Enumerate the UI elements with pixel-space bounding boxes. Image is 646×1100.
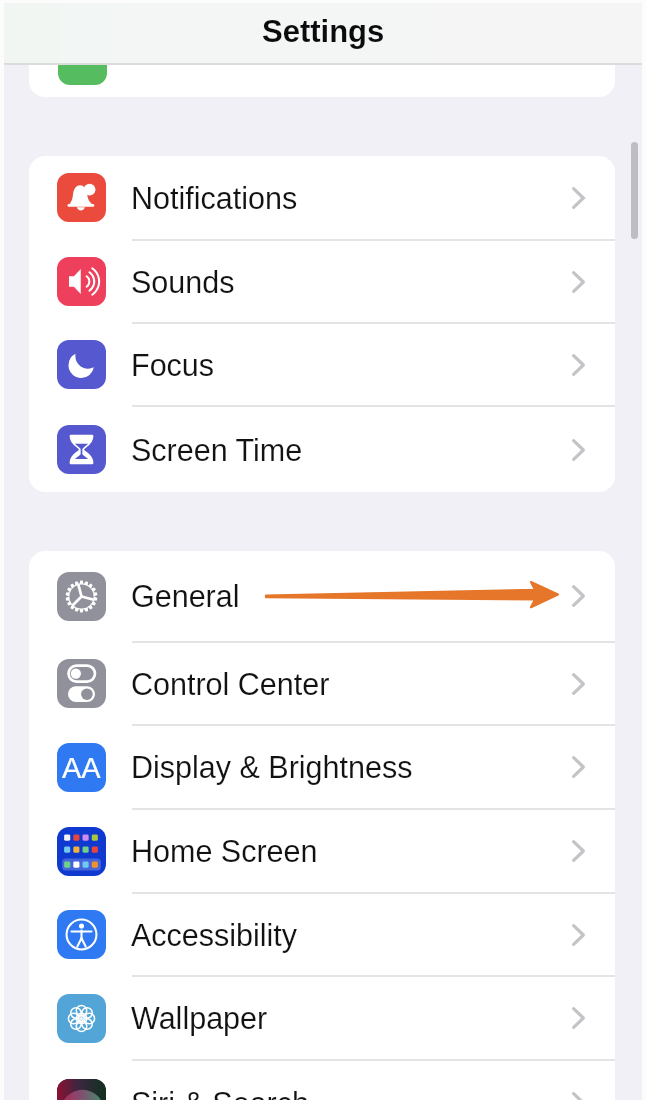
staticText: Accessibility [131,918,298,952]
staticText: Notifications [131,181,298,215]
staticText: AA [62,752,101,784]
button[interactable]: General [29,551,615,641]
button[interactable]: Screen Time [29,407,615,492]
staticText: Screen Time [131,433,303,467]
staticText: Wallpaper [131,1001,268,1035]
button[interactable]: Sounds [29,241,615,322]
staticText: Settings [262,14,385,49]
staticText: Display & Brightness [131,750,413,784]
button[interactable]: Focus [29,324,615,405]
staticText: Siri & Search [131,1086,309,1100]
button[interactable]: Notifications [29,156,615,239]
button[interactable]: AA [29,726,615,808]
staticText: General [131,579,240,613]
button[interactable]: Home Screen [29,810,615,892]
staticText: Home Screen [131,834,318,868]
staticText: Focus [131,348,215,382]
staticText: Sounds [131,265,235,299]
staticText: Control Center [131,667,330,701]
button[interactable]: Wallpaper [29,977,615,1059]
button[interactable]: Control Center [29,643,615,724]
button[interactable]: Siri & Search [29,1061,615,1100]
button[interactable]: Accessibility [29,894,615,975]
